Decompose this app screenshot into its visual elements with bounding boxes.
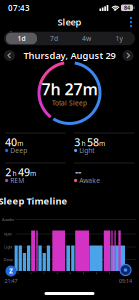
- staticText: REM: [4, 231, 12, 237]
- staticText: Light: [79, 146, 94, 155]
- staticText: Deep: [3, 257, 12, 262]
- staticText: 3: [74, 135, 80, 149]
- staticText: 58: [87, 135, 99, 149]
- staticText: m: [99, 139, 105, 148]
- staticText: 7h 27m: [41, 78, 97, 100]
- staticText: Awake: [79, 176, 100, 185]
- staticText: h: [13, 169, 17, 178]
- staticText: 2: [5, 165, 11, 179]
- button[interactable]: [126, 16, 136, 28]
- button[interactable]: [4, 50, 15, 61]
- staticText: Awake: [2, 217, 14, 222]
- staticText: Deep: [10, 146, 27, 155]
- button[interactable]: 4w: [71, 32, 102, 45]
- staticText: 1d: [17, 34, 25, 43]
- staticText: 7d: [50, 34, 58, 43]
- staticText: 21:47: [4, 277, 17, 285]
- button[interactable]: 1d: [5, 32, 37, 45]
- button[interactable]: 7d: [38, 32, 69, 45]
- staticText: Total Sleep: [52, 99, 87, 107]
- staticText: Sleep Timeline: [0, 195, 67, 207]
- staticText: 05:14: [119, 277, 132, 285]
- staticText: m: [30, 169, 36, 178]
- staticText: 07:43: [8, 3, 30, 13]
- staticText: Light: [4, 244, 12, 250]
- staticText: REM: [10, 176, 24, 185]
- staticText: 84: [124, 4, 130, 11]
- staticText: 49: [18, 165, 30, 179]
- staticText: --: [75, 165, 81, 179]
- staticText: Sleep: [57, 16, 81, 28]
- staticText: 1y: [115, 34, 122, 43]
- staticText: m: [17, 139, 23, 148]
- staticText: h: [82, 139, 86, 148]
- staticText: z: [9, 265, 13, 276]
- button[interactable]: 1y: [103, 32, 134, 45]
- button[interactable]: [122, 50, 133, 61]
- staticText: 40: [5, 135, 17, 149]
- staticText: Thursday, August 29: [23, 49, 115, 62]
- staticText: 4w: [82, 34, 91, 43]
